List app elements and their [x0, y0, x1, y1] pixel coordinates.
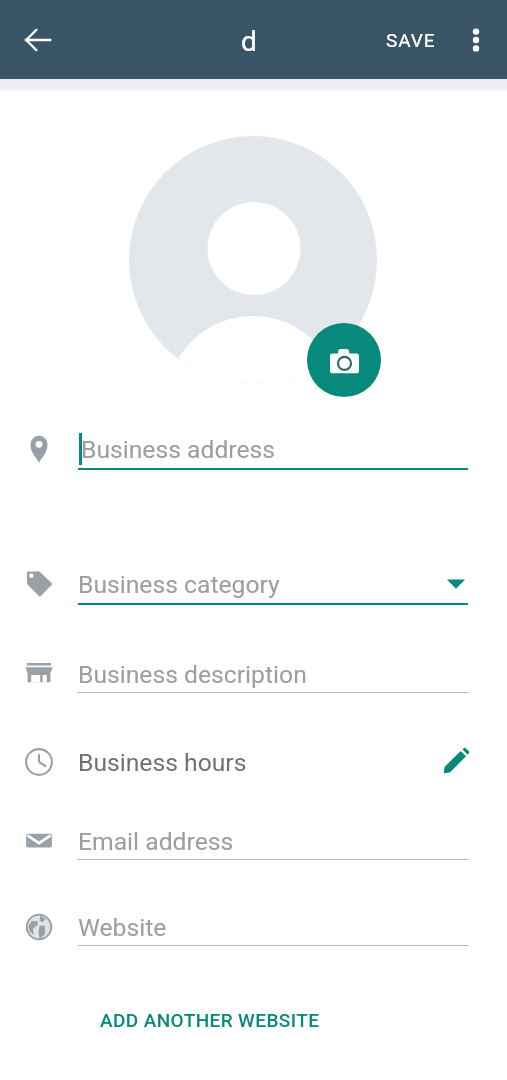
button[interactable]: Edit business hours	[434, 740, 478, 784]
staticText: Business category	[78, 570, 280, 599]
staticText: Business hours	[78, 748, 247, 777]
button[interactable]: Profile photo	[129, 136, 377, 384]
button[interactable]: ADD ANOTHER WEBSITE	[94, 1002, 326, 1038]
staticText: Business address	[81, 435, 276, 464]
button[interactable]: Business address	[0, 420, 507, 478]
button[interactable]: Change profile photo	[307, 323, 381, 397]
button[interactable]: Business description	[0, 645, 507, 703]
button[interactable]: Website	[0, 898, 507, 956]
staticText: Email address	[78, 827, 234, 856]
button[interactable]: Business category	[0, 555, 507, 613]
button[interactable]: More options	[453, 17, 499, 63]
staticText: Website	[78, 913, 167, 942]
button[interactable]: SAVE	[374, 15, 448, 65]
button[interactable]: Open category list	[434, 562, 478, 606]
staticText: d	[241, 25, 257, 58]
button[interactable]: Business hours	[0, 733, 507, 791]
button[interactable]: Back	[14, 16, 62, 64]
staticText: ADD ANOTHER WEBSITE	[100, 1009, 320, 1031]
staticText: SAVE	[386, 29, 436, 51]
staticText: Business description	[78, 660, 307, 689]
button[interactable]: Email address	[0, 812, 507, 870]
